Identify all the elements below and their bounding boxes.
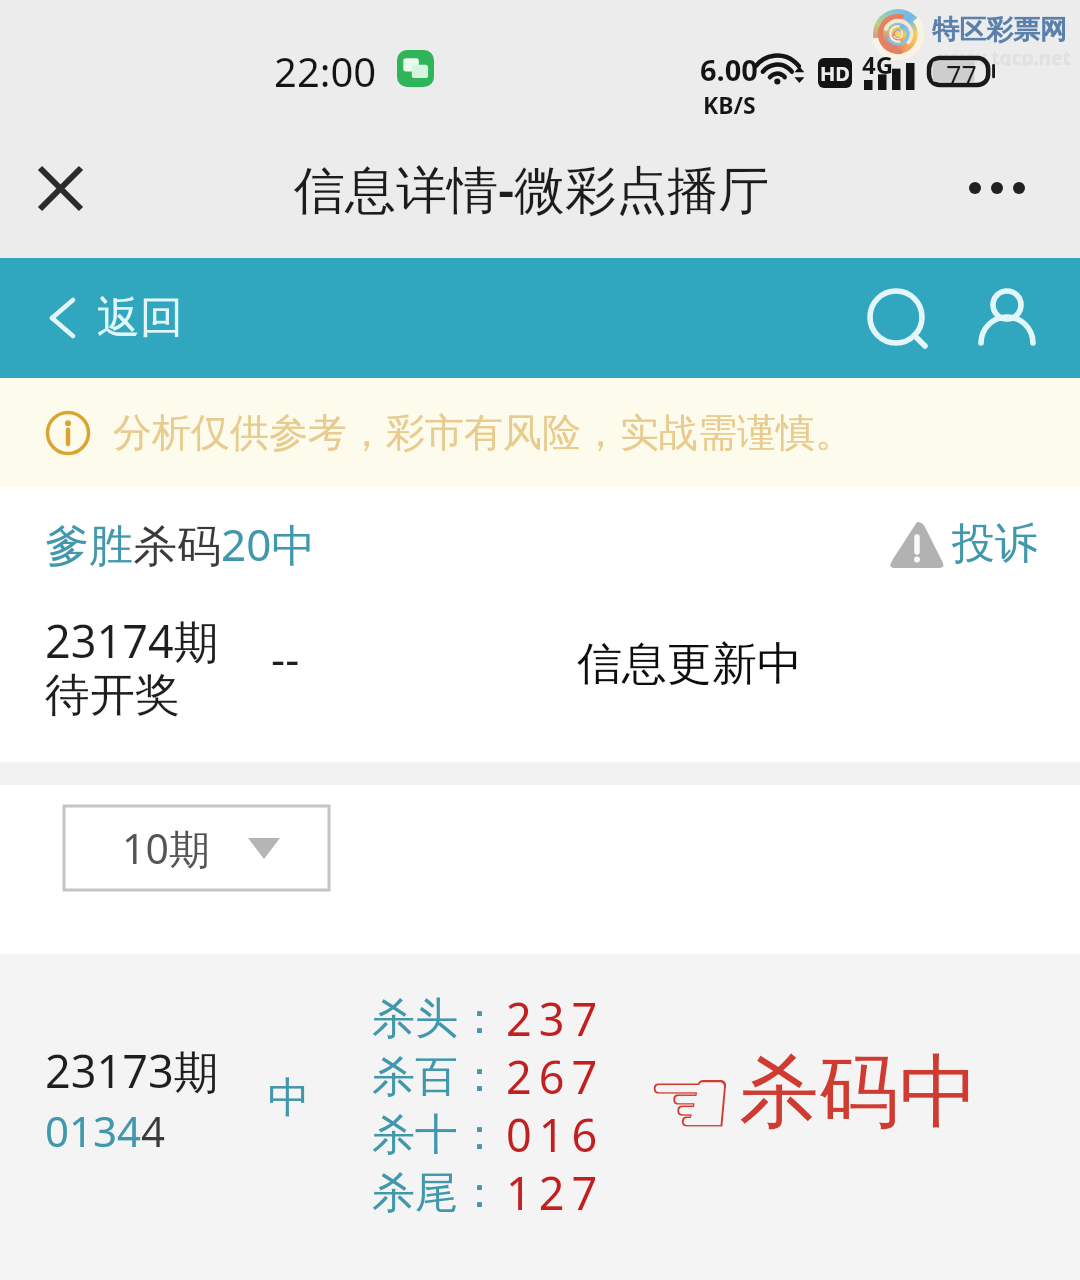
staticText: 23173期 (45, 1040, 219, 1101)
staticText: -- (271, 628, 300, 688)
staticText: ☜ (645, 1044, 735, 1160)
staticText: 77 (946, 57, 977, 87)
staticText: 22:00 (274, 44, 377, 98)
staticText: 杀十： (372, 1108, 501, 1162)
button[interactable]: 关闭 (20, 148, 100, 228)
button[interactable]: 返回 (38, 291, 195, 345)
staticText: 杀百： (372, 1050, 501, 1104)
staticText: 杀尾： (372, 1166, 501, 1220)
staticText: 杀头： (372, 992, 501, 1046)
staticText: 中 (268, 1072, 310, 1125)
staticText: 待开奖 (45, 667, 180, 724)
staticText: 10期 (122, 820, 210, 876)
staticText: 返回 (97, 291, 183, 345)
staticText: 爹胜杀码20中 (45, 514, 316, 574)
staticText: 01344 (45, 1102, 166, 1159)
staticText: 016 (506, 1104, 605, 1165)
staticText: KB/S (703, 89, 756, 118)
staticText: 4G (862, 48, 894, 81)
button[interactable]: 搜索 (855, 274, 943, 362)
button[interactable]: 10期 (64, 806, 329, 890)
button[interactable]: 更多 (949, 156, 1045, 220)
staticText: 信息详情-微彩点播厅 (294, 153, 770, 223)
staticText: 127 (506, 1162, 605, 1223)
staticText: 投诉 (952, 517, 1038, 571)
button[interactable]: 我的 (963, 274, 1051, 362)
staticText: 信息更新中 (577, 636, 802, 693)
staticText: www.tqcp.net (938, 45, 1071, 66)
staticText: HD (820, 60, 850, 87)
staticText: 杀码中 (739, 1042, 979, 1143)
staticText: 237 (506, 988, 605, 1049)
staticText: 267 (506, 1046, 605, 1107)
button[interactable]: 投诉 (888, 517, 1038, 571)
staticText: 23174期 (45, 610, 219, 671)
staticText: 特区彩票网 (932, 13, 1067, 47)
staticText: 分析仅供参考，彩市有风险，实战需谨慎。 (113, 408, 854, 457)
staticText: 6.00 (700, 50, 758, 89)
